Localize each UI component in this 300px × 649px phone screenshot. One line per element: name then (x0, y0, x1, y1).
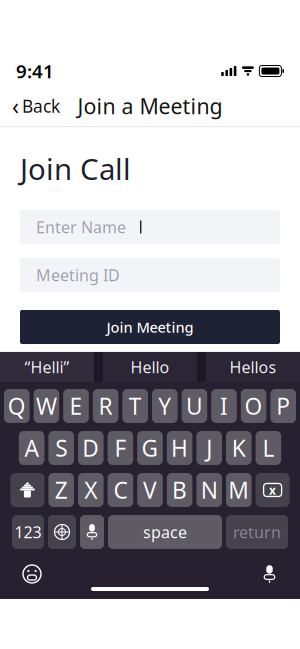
button[interactable]: Dictation (251, 555, 288, 592)
button[interactable]: C (108, 473, 133, 507)
staticText: Join Meeting (106, 317, 193, 337)
staticText: I (220, 391, 228, 421)
staticText: Hello (130, 356, 169, 378)
button[interactable]: W (34, 389, 59, 423)
staticText: Y (158, 391, 171, 421)
staticText: O (245, 391, 263, 421)
button[interactable]: O (241, 389, 266, 423)
staticText: C (113, 475, 127, 505)
button[interactable]: ‹ (0, 86, 72, 126)
staticText: space (143, 521, 187, 543)
staticText: G (141, 433, 158, 463)
button[interactable]: A (19, 431, 44, 465)
button[interactable]: Z (48, 473, 74, 507)
staticText: “Helli” (24, 356, 69, 378)
staticText: Meeting ID (36, 264, 120, 286)
button[interactable]: V (137, 473, 163, 507)
staticText: F (114, 433, 126, 463)
staticText: Back (22, 94, 60, 117)
staticText: 9:41 (16, 59, 54, 83)
button[interactable]: Shift (10, 473, 44, 507)
button[interactable]: T (122, 389, 148, 423)
button[interactable]: Hellos (206, 352, 300, 382)
staticText: ‹ (12, 91, 19, 121)
staticText: N (201, 475, 218, 505)
button[interactable]: 123 (12, 515, 44, 549)
staticText: x (269, 482, 276, 498)
button[interactable]: S (48, 431, 74, 465)
staticText: Hellos (229, 356, 276, 378)
button[interactable]: K (226, 431, 252, 465)
button[interactable]: J (196, 431, 222, 465)
staticText: 123 (14, 521, 41, 543)
button[interactable]: Delete (256, 473, 290, 507)
button[interactable]: Join Meeting (20, 310, 280, 344)
button[interactable]: F (108, 431, 133, 465)
button[interactable]: return (226, 515, 288, 549)
staticText: S (55, 433, 67, 463)
button[interactable]: G (137, 431, 163, 465)
button[interactable]: B (167, 473, 192, 507)
staticText: X (84, 475, 97, 505)
button[interactable]: Next keyboard (48, 515, 76, 549)
staticText: Enter Name (36, 216, 126, 238)
button[interactable]: N (196, 473, 222, 507)
staticText: H (171, 433, 188, 463)
button[interactable]: space (108, 515, 222, 549)
button[interactable]: E (63, 389, 89, 423)
staticText: Q (8, 391, 26, 421)
button[interactable]: H (167, 431, 192, 465)
staticText: A (25, 433, 39, 463)
button[interactable]: X (78, 473, 104, 507)
button[interactable]: “Helli” (0, 352, 94, 382)
button[interactable]: Hello (103, 352, 197, 382)
button[interactable]: Dictate (80, 515, 104, 549)
staticText: W (36, 391, 57, 421)
staticText: Join a Meeting (77, 92, 222, 120)
staticText: D (82, 433, 99, 463)
button[interactable]: D (78, 431, 104, 465)
staticText: U (186, 391, 203, 421)
button[interactable]: Emoji (12, 554, 52, 594)
staticText: P (276, 391, 290, 421)
staticText: E (69, 391, 82, 421)
staticText: L (262, 433, 274, 463)
staticText: Z (55, 475, 68, 505)
staticText: K (232, 433, 246, 463)
staticText: return (233, 521, 281, 543)
button[interactable]: L (256, 431, 281, 465)
button[interactable]: U (182, 389, 207, 423)
staticText: B (172, 475, 187, 505)
button[interactable]: Enter Name (20, 210, 280, 244)
staticText: T (129, 391, 142, 421)
button[interactable]: P (270, 389, 296, 423)
staticText: R (99, 391, 113, 421)
button[interactable]: Meeting ID (20, 258, 280, 292)
staticText: J (206, 433, 212, 463)
button[interactable]: R (93, 389, 118, 423)
button[interactable]: Y (152, 389, 178, 423)
staticText: V (143, 475, 157, 505)
button[interactable]: Q (4, 389, 30, 423)
button[interactable]: M (226, 473, 252, 507)
staticText: Join Call (20, 149, 131, 188)
staticText: M (228, 475, 249, 505)
button[interactable]: I (211, 389, 237, 423)
